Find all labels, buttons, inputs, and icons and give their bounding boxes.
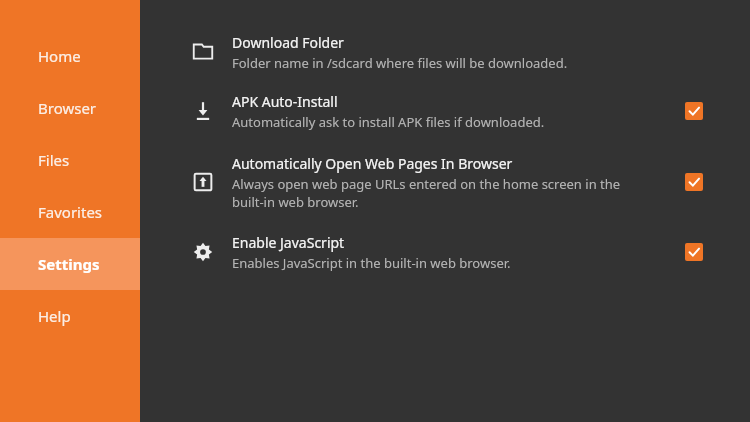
staticText: Automatically Open Web Pages In Browser bbox=[232, 154, 513, 173]
staticText: Help bbox=[38, 306, 71, 326]
staticText: Automatically ask to install APK files i… bbox=[232, 113, 545, 131]
staticText: Browser bbox=[38, 98, 97, 118]
button[interactable]: Favorites bbox=[0, 186, 140, 238]
button[interactable]: Settings bbox=[0, 238, 140, 290]
staticText: Folder name in /sdcard where files will … bbox=[232, 54, 568, 72]
button[interactable]: Toggle APK Auto-Install bbox=[685, 102, 703, 120]
button[interactable]: Toggle Automatically Open Web Pages In B… bbox=[685, 173, 703, 191]
button[interactable]: Help bbox=[0, 290, 140, 342]
staticText: Download Folder bbox=[232, 33, 344, 52]
button[interactable]: Enable JavaScript bbox=[140, 222, 750, 282]
button[interactable]: APK Auto-Install bbox=[140, 80, 750, 142]
staticText: Favorites bbox=[38, 202, 103, 222]
staticText: Files bbox=[38, 150, 70, 170]
staticText: APK Auto-Install bbox=[232, 92, 338, 111]
staticText: Enable JavaScript bbox=[232, 233, 345, 252]
button[interactable]: Browser bbox=[0, 82, 140, 134]
button[interactable]: Toggle Enable JavaScript bbox=[685, 243, 703, 261]
button[interactable]: Home bbox=[0, 30, 140, 82]
button[interactable]: Automatically Open Web Pages In Browser bbox=[140, 142, 750, 222]
button[interactable]: Download Folder bbox=[140, 24, 750, 80]
staticText: Always open web page URLs entered on the… bbox=[232, 175, 652, 211]
staticText: Settings bbox=[38, 254, 100, 274]
button[interactable]: Files bbox=[0, 134, 140, 186]
staticText: Enables JavaScript in the built-in web b… bbox=[232, 254, 511, 272]
staticText: Home bbox=[38, 46, 81, 66]
